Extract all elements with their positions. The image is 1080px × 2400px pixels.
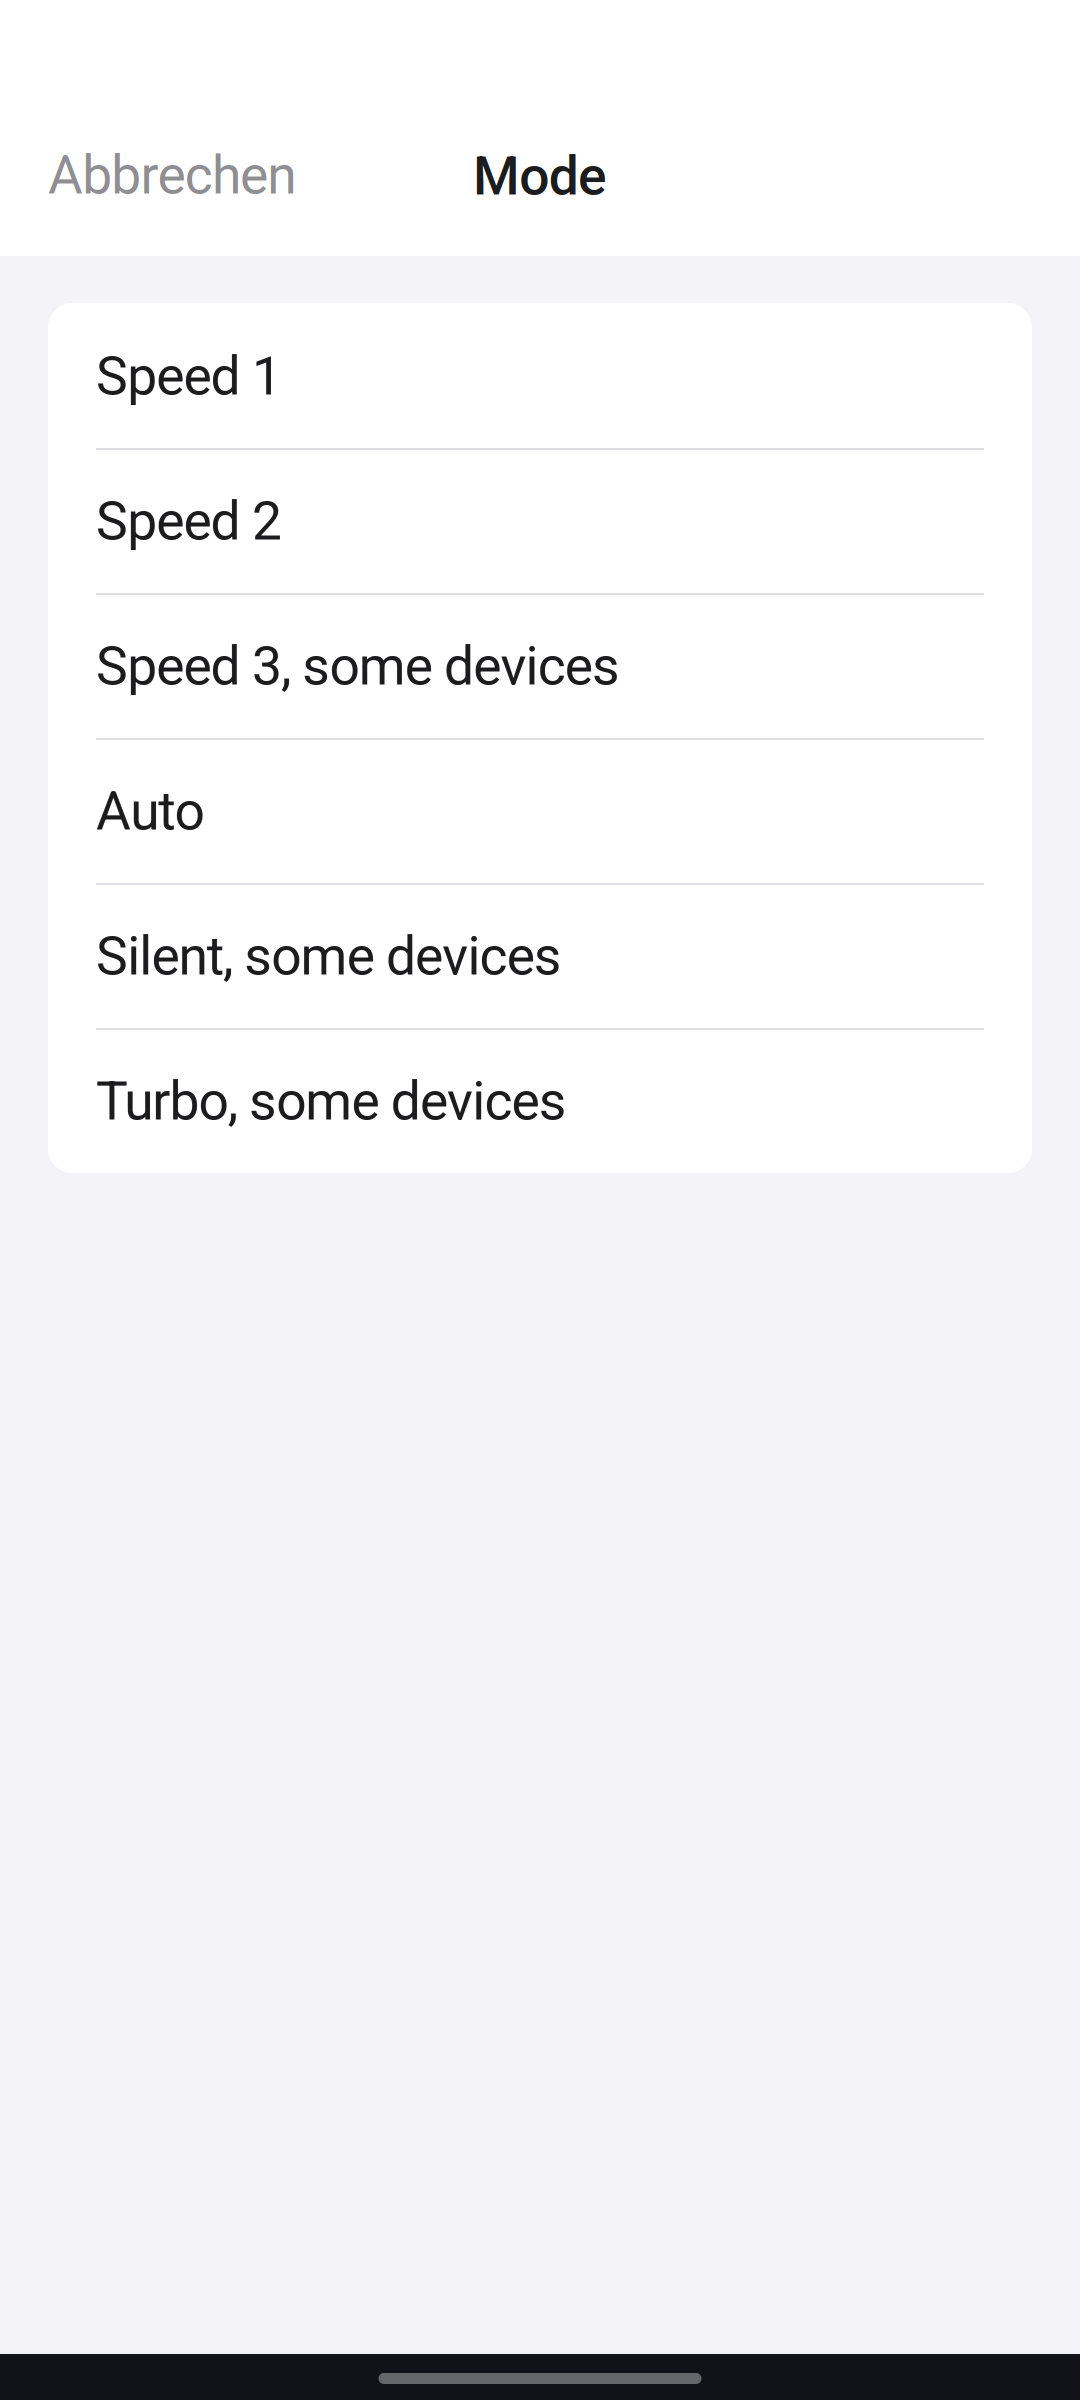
staticText: Turbo, some devices xyxy=(96,1070,567,1132)
staticText: Auto xyxy=(96,780,204,842)
button[interactable]: Auto xyxy=(48,738,1032,883)
button[interactable]: Speed 2 xyxy=(48,448,1032,593)
staticText: Speed 2 xyxy=(96,490,282,552)
staticText: Speed 3, some devices xyxy=(96,635,620,697)
staticText: Silent, some devices xyxy=(96,925,562,987)
staticText: Speed 1 xyxy=(96,345,282,407)
staticText: Abbrechen xyxy=(48,144,296,206)
button[interactable]: Abbrechen xyxy=(0,118,332,232)
button[interactable]: Turbo, some devices xyxy=(48,1028,1032,1173)
button[interactable]: Silent, some devices xyxy=(48,883,1032,1028)
button[interactable]: Speed 1 xyxy=(48,303,1032,448)
button[interactable]: Speed 3, some devices xyxy=(48,593,1032,738)
staticText: Mode xyxy=(473,145,607,207)
